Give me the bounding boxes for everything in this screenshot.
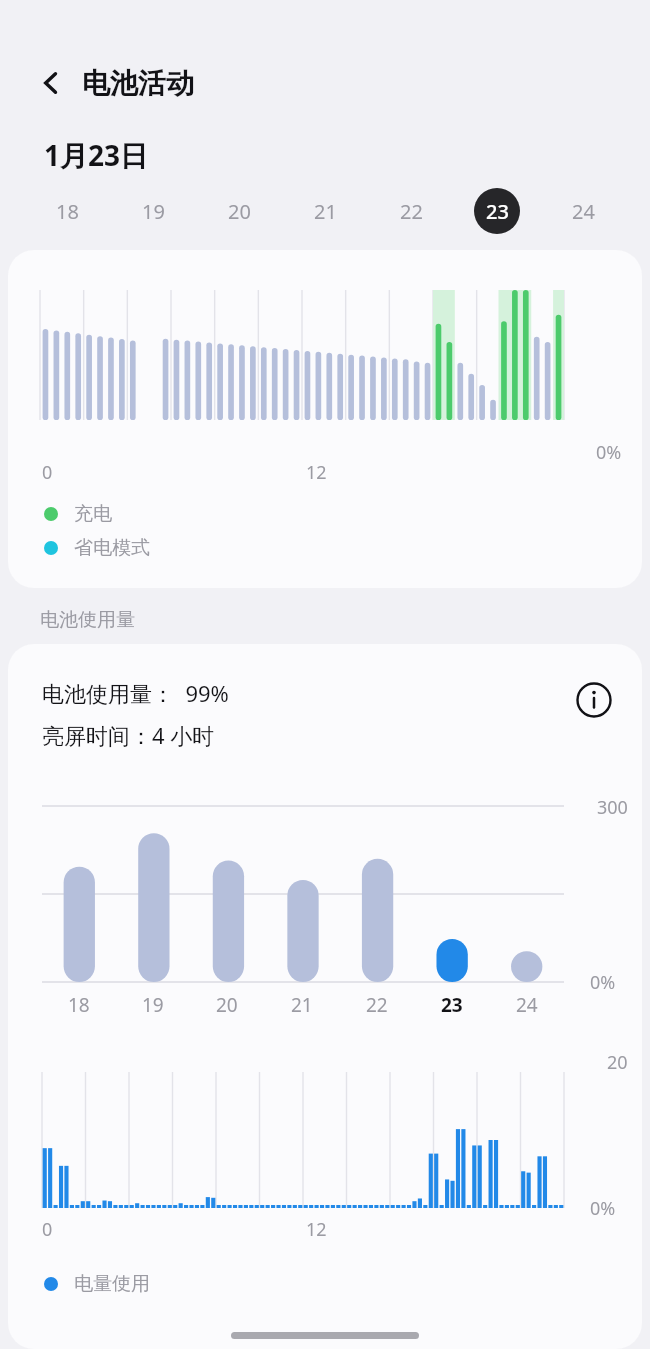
- button[interactable]: Back: [28, 60, 74, 106]
- staticText: 电池使用量： 99%: [42, 678, 229, 708]
- staticText: 0%: [590, 970, 616, 995]
- button[interactable]: Info: [572, 678, 616, 722]
- staticText: 22: [366, 992, 388, 1018]
- button[interactable]: 22: [368, 186, 454, 236]
- button[interactable]: 24: [540, 186, 626, 236]
- staticText: 22: [400, 198, 423, 225]
- staticText: 23: [441, 992, 463, 1018]
- staticText: 20: [216, 992, 238, 1018]
- staticText: 20: [607, 1050, 628, 1075]
- button[interactable]: 23: [454, 186, 540, 236]
- staticText: 18: [68, 992, 90, 1018]
- staticText: 1月23日: [44, 136, 149, 174]
- staticText: 300: [597, 795, 628, 820]
- staticText: 18: [56, 198, 79, 225]
- staticText: 0: [42, 1217, 53, 1242]
- staticText: 12: [306, 460, 327, 485]
- button[interactable]: 20: [196, 186, 282, 236]
- staticText: 0%: [596, 440, 622, 465]
- staticText: 12: [306, 1217, 327, 1242]
- staticText: 24: [516, 992, 538, 1018]
- staticText: 省电模式: [74, 536, 150, 560]
- staticText: 电池使用量: [40, 608, 135, 632]
- button[interactable]: 21: [282, 186, 368, 236]
- staticText: 0: [42, 460, 53, 485]
- staticText: 21: [291, 992, 313, 1018]
- staticText: 21: [314, 198, 337, 225]
- staticText: 24: [572, 198, 595, 225]
- staticText: 23: [486, 198, 509, 225]
- button[interactable]: 0%: [8, 250, 642, 588]
- staticText: 0%: [590, 1196, 616, 1221]
- staticText: 充电: [74, 502, 112, 526]
- staticText: 19: [142, 198, 165, 225]
- staticText: 电池活动: [82, 66, 194, 101]
- button[interactable]: 19: [110, 186, 196, 236]
- staticText: 电量使用: [74, 1272, 150, 1296]
- button[interactable]: 18: [24, 186, 110, 236]
- staticText: 20: [228, 198, 251, 225]
- staticText: 19: [142, 992, 164, 1018]
- staticText: 亮屏时间：4 小时: [42, 720, 215, 750]
